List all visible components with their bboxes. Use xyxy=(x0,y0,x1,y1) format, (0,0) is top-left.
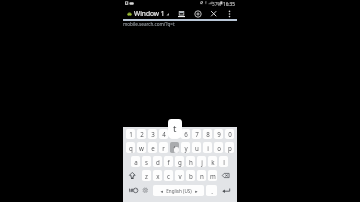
staticText: q xyxy=(129,144,133,152)
button[interactable]: 6 xyxy=(181,129,190,139)
staticText: 3 xyxy=(151,130,155,138)
staticText: y xyxy=(184,144,188,152)
button[interactable]: p xyxy=(225,142,234,153)
staticText: t xyxy=(173,122,177,135)
staticText: e xyxy=(151,144,155,152)
staticText: a xyxy=(134,158,138,166)
button[interactable]: Shift xyxy=(126,170,140,181)
button[interactable]: k xyxy=(208,156,217,167)
staticText: p xyxy=(228,144,232,152)
staticText: c xyxy=(167,172,170,180)
button[interactable]: b xyxy=(186,170,195,181)
button[interactable]: Window 1 xyxy=(125,8,173,19)
staticText: w xyxy=(139,144,144,152)
button[interactable]: u xyxy=(192,142,201,153)
staticText: 16:35 xyxy=(223,1,235,7)
button[interactable]: 9 xyxy=(214,129,223,139)
button[interactable]: 0 xyxy=(225,129,234,139)
staticText: b xyxy=(189,172,193,180)
staticText: i xyxy=(207,144,209,152)
button[interactable]: l xyxy=(219,156,228,167)
button[interactable]: e xyxy=(148,142,157,153)
button[interactable]: More options xyxy=(225,8,234,19)
button[interactable]: m xyxy=(208,170,217,181)
staticText: mobile.search.com/?q=t xyxy=(123,21,175,27)
button[interactable]: Close window xyxy=(208,8,219,19)
button[interactable]: New window xyxy=(192,8,203,19)
button[interactable]: z xyxy=(142,170,151,181)
button[interactable]: r xyxy=(159,142,168,153)
staticText: n xyxy=(200,172,204,180)
staticText: u xyxy=(195,144,199,152)
button[interactable]: j xyxy=(197,156,206,167)
staticText: Window 1 xyxy=(134,9,165,18)
button[interactable]: Backspace xyxy=(219,170,234,181)
button[interactable]: g xyxy=(175,156,184,167)
staticText: m xyxy=(210,172,216,180)
staticText: 0 xyxy=(228,130,232,138)
button[interactable]: 7 xyxy=(192,129,201,139)
button[interactable]: x xyxy=(153,170,162,181)
staticText: t xyxy=(173,144,176,152)
button[interactable]: 3 xyxy=(148,129,157,139)
button[interactable]: ◂ English (US) ▸ xyxy=(153,185,204,196)
button[interactable]: 5 xyxy=(170,129,179,139)
button[interactable]: w xyxy=(137,142,146,153)
button[interactable]: . xyxy=(206,185,217,196)
staticText: z xyxy=(145,172,148,180)
staticText: ◂ English (US) ▸ xyxy=(160,188,198,194)
staticText: o xyxy=(217,144,221,152)
staticText: 9 xyxy=(217,130,221,138)
button[interactable]: i xyxy=(203,142,212,153)
staticText: 4 xyxy=(162,130,166,138)
button[interactable]: f xyxy=(164,156,173,167)
button[interactable]: t xyxy=(170,142,179,153)
button[interactable]: n xyxy=(197,170,206,181)
button[interactable]: h xyxy=(186,156,195,167)
staticText: 2 xyxy=(140,130,144,138)
staticText: 7 xyxy=(195,130,199,138)
staticText: 5 xyxy=(173,130,177,138)
button[interactable]: Enter xyxy=(219,185,234,196)
staticText: 37% xyxy=(212,1,222,7)
staticText: 1 xyxy=(129,130,133,138)
staticText: r xyxy=(162,144,165,152)
staticText: 8 xyxy=(206,130,210,138)
staticText: k xyxy=(211,158,215,166)
staticText: s xyxy=(145,158,148,166)
staticText: f xyxy=(167,158,170,166)
staticText: j xyxy=(201,158,203,166)
button[interactable]: 2 xyxy=(137,129,146,139)
button[interactable]: o xyxy=(214,142,223,153)
button[interactable]: d xyxy=(153,156,162,167)
staticText: h xyxy=(189,158,193,166)
button[interactable]: c xyxy=(164,170,173,181)
staticText: 6 xyxy=(184,130,188,138)
button[interactable]: 4 xyxy=(159,129,168,139)
staticText: . xyxy=(211,187,213,195)
staticText: x xyxy=(156,172,160,180)
button[interactable]: 1 xyxy=(126,129,135,139)
staticText: d xyxy=(156,158,160,166)
staticText: g xyxy=(178,158,182,166)
button[interactable]: Symbols xyxy=(126,185,138,196)
button[interactable]: Emoji xyxy=(140,185,151,196)
button[interactable]: v xyxy=(175,170,184,181)
button[interactable]: y xyxy=(181,142,190,153)
staticText: v xyxy=(178,172,182,180)
button[interactable]: s xyxy=(142,156,151,167)
staticText: l xyxy=(223,158,225,166)
button[interactable]: q xyxy=(126,142,135,153)
button[interactable]: 8 xyxy=(203,129,212,139)
button[interactable]: Desktop version xyxy=(176,8,187,19)
button[interactable]: a xyxy=(131,156,140,167)
